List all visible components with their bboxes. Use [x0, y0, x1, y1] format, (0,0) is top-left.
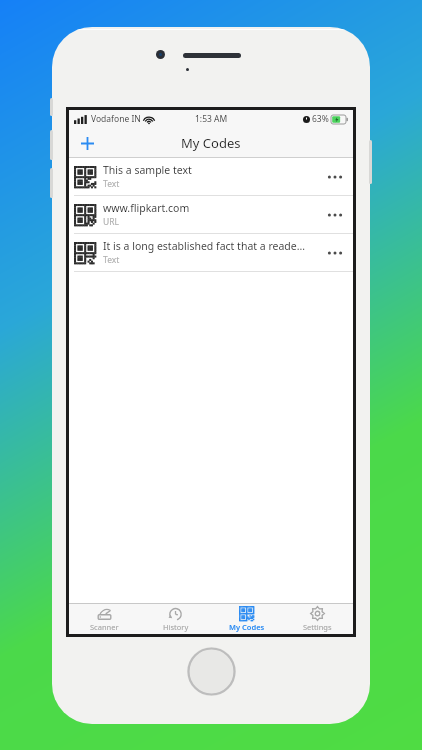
button[interactable]: Settings [282, 604, 353, 634]
staticText: Text [103, 178, 120, 190]
staticText: Text [103, 254, 120, 266]
staticText: It is a long established fact that a rea… [103, 239, 306, 253]
button[interactable]: www.flipkart.com [69, 196, 353, 234]
staticText: 1:53 AM [195, 113, 228, 125]
staticText: My Codes [229, 622, 265, 632]
button[interactable]: Scanner [69, 604, 140, 634]
staticText: This a sample text [103, 163, 192, 177]
button[interactable]: It is a long established fact that a rea… [69, 234, 353, 272]
staticText: Vodafone IN [91, 113, 141, 125]
button[interactable]: More options [322, 163, 348, 191]
staticText: Settings [303, 622, 332, 632]
button[interactable]: More options [322, 201, 348, 229]
staticText: History [163, 622, 189, 632]
button[interactable]: This a sample text [69, 158, 353, 196]
staticText: URL [103, 216, 119, 228]
staticText: www.flipkart.com [103, 201, 190, 215]
button[interactable]: More options [322, 239, 348, 267]
staticText: My Codes [181, 134, 241, 152]
button[interactable]: History [140, 604, 211, 634]
button[interactable]: Add code [69, 128, 105, 158]
button[interactable]: My Codes [211, 604, 282, 634]
staticText: Scanner [90, 622, 119, 632]
staticText: 63% [312, 113, 329, 125]
